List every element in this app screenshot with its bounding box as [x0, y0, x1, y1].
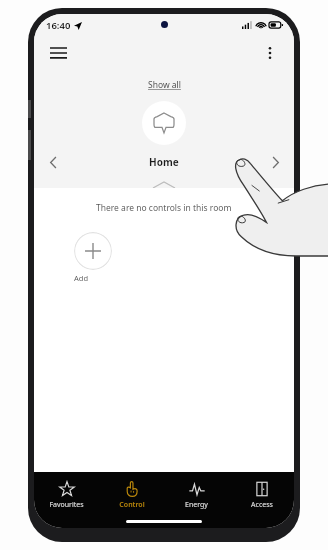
button[interactable]: Show all	[144, 77, 185, 93]
staticText: There are no controls in this room	[96, 202, 232, 214]
button[interactable]: Menu	[42, 37, 74, 69]
button[interactable]: Home	[142, 101, 186, 145]
staticText: Energy	[185, 500, 208, 510]
staticText: Access	[251, 500, 273, 510]
button[interactable]: Control	[99, 478, 164, 513]
staticText: Add	[74, 273, 112, 283]
button[interactable]: Energy	[164, 478, 229, 513]
button[interactable]: Access	[229, 478, 294, 513]
staticText: 16:40	[46, 19, 71, 32]
button[interactable]: Add control	[74, 232, 112, 270]
staticText: Show all	[148, 79, 181, 91]
staticText: Favourites	[49, 500, 84, 510]
button[interactable]: More options	[254, 37, 286, 69]
button[interactable]: Favourites	[34, 478, 99, 513]
button[interactable]: Next room	[262, 151, 288, 173]
button[interactable]: Previous room	[40, 151, 66, 173]
staticText: Control	[119, 500, 145, 510]
staticText: Home	[149, 155, 179, 169]
